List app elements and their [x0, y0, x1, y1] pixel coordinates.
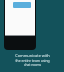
staticText: Communicate with — [15, 53, 50, 58]
staticText: the entire team using — [15, 58, 50, 63]
staticText: chat rooms — [24, 63, 41, 67]
